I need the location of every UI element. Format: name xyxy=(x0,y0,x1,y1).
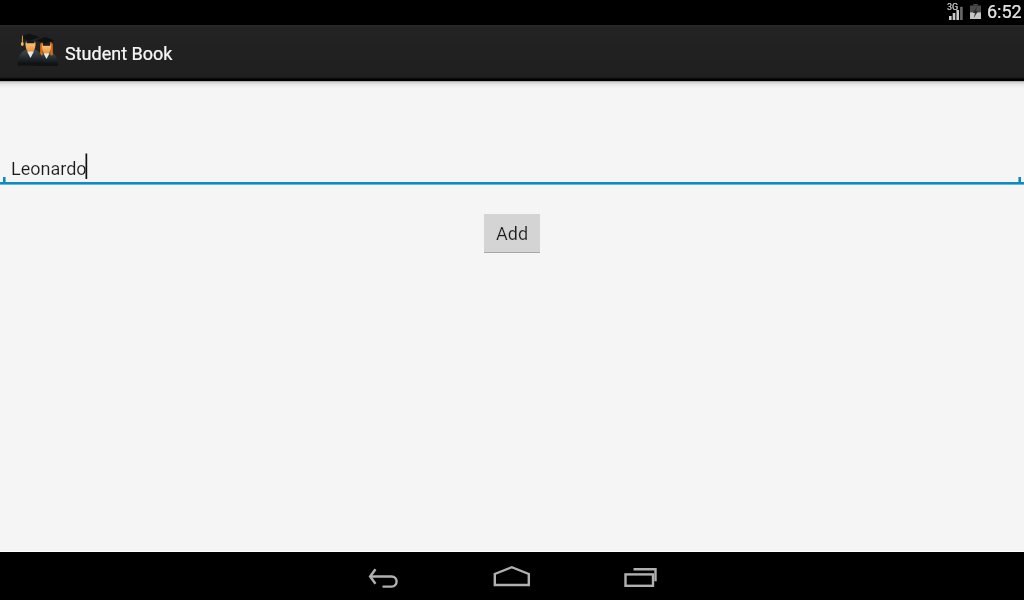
staticText: Student Book xyxy=(65,43,173,64)
staticText: Leonardo xyxy=(11,158,87,179)
button[interactable]: Back xyxy=(348,552,420,600)
staticText: 3G xyxy=(947,2,959,13)
button[interactable]: Recent apps xyxy=(604,552,676,600)
button[interactable]: Student Book app icon xyxy=(0,25,188,81)
staticText: Add xyxy=(496,223,529,244)
button[interactable]: Leonardo xyxy=(0,150,1024,185)
other: Student Book app icon xyxy=(15,32,57,74)
staticText: 6:52 xyxy=(987,1,1022,22)
button[interactable]: Home xyxy=(476,552,548,600)
button[interactable]: Add xyxy=(484,214,540,253)
